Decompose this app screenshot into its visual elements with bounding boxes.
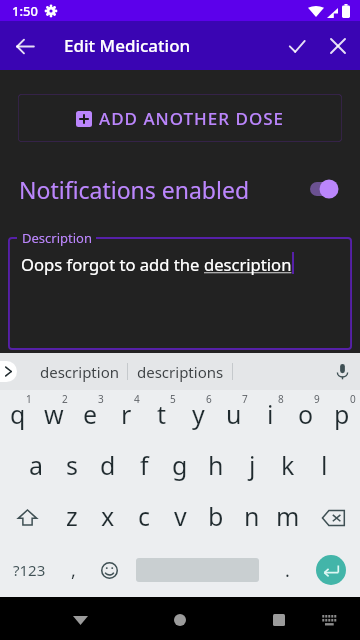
button[interactable]: s — [54, 441, 90, 492]
button[interactable]: Enter — [316, 555, 346, 585]
button[interactable]: Close — [320, 28, 356, 64]
button[interactable]: Home — [160, 600, 200, 640]
staticText: a — [29, 448, 44, 482]
staticText: 5 — [170, 392, 176, 406]
button[interactable]: m — [270, 492, 306, 543]
staticText: s — [66, 448, 78, 482]
button[interactable]: k — [270, 441, 306, 492]
staticText: y — [192, 397, 205, 431]
staticText: p — [334, 397, 350, 431]
button[interactable]: i — [252, 390, 288, 441]
staticText: ?123 — [13, 560, 46, 580]
button[interactable]: Shift — [0, 492, 54, 543]
button[interactable]: . — [270, 543, 304, 597]
staticText: u — [226, 397, 242, 431]
button[interactable]: t — [144, 390, 180, 441]
button[interactable]: x — [90, 492, 126, 543]
button[interactable]: , — [56, 543, 90, 597]
staticText: v — [174, 499, 187, 533]
staticText: 1:50 — [12, 2, 38, 20]
staticText: k — [281, 448, 295, 482]
staticText: 1 — [26, 392, 32, 406]
button[interactable]: ?123 — [5, 543, 53, 597]
staticText: i — [267, 397, 274, 431]
staticText: z — [66, 499, 78, 533]
button[interactable]: a — [18, 441, 54, 492]
staticText: description — [204, 253, 292, 276]
button[interactable]: e — [72, 390, 108, 441]
button[interactable]: Backspace — [306, 492, 360, 543]
staticText: f — [140, 448, 149, 482]
button[interactable]: y — [180, 390, 216, 441]
staticText: g — [172, 448, 188, 482]
staticText: m — [276, 499, 300, 533]
staticText: 0 — [350, 392, 356, 406]
button[interactable]: q — [0, 390, 36, 441]
button[interactable]: d — [90, 441, 126, 492]
button[interactable]: z — [54, 492, 90, 543]
staticText: j — [249, 448, 256, 482]
button[interactable]: Save — [279, 28, 315, 64]
staticText: n — [244, 499, 260, 533]
button[interactable]: f — [126, 441, 162, 492]
button[interactable]: Back — [60, 600, 100, 640]
button[interactable]: o — [288, 390, 324, 441]
button[interactable]: w — [36, 390, 72, 441]
button[interactable]: r — [108, 390, 144, 441]
staticText: Description — [22, 229, 92, 247]
staticText: 2 — [62, 392, 68, 406]
staticText: 6 — [206, 392, 212, 406]
staticText: l — [321, 448, 328, 482]
button[interactable]: Back — [7, 28, 43, 64]
button[interactable]: v — [162, 492, 198, 543]
button[interactable]: descriptions — [128, 353, 232, 390]
staticText: h — [208, 448, 224, 482]
button[interactable]: p — [324, 390, 360, 441]
staticText: x — [101, 499, 115, 533]
button[interactable]: u — [216, 390, 252, 441]
staticText: o — [298, 397, 314, 431]
button[interactable]: description — [28, 353, 131, 390]
staticText: Oops forgot to add the — [21, 253, 204, 276]
staticText: 4 — [134, 392, 140, 406]
button[interactable]: h — [198, 441, 234, 492]
button[interactable]: j — [234, 441, 270, 492]
button[interactable]: Recent apps — [259, 600, 299, 640]
staticText: b — [208, 499, 224, 533]
staticText: , — [71, 558, 76, 583]
button[interactable]: l — [306, 441, 342, 492]
staticText: Notifications enabled — [19, 174, 250, 205]
button[interactable]: Voice input — [327, 356, 358, 387]
staticText: 7 — [242, 392, 248, 406]
button[interactable]: b — [198, 492, 234, 543]
staticText: c — [138, 499, 151, 533]
staticText: t — [157, 397, 167, 431]
staticText: description — [40, 362, 119, 382]
button[interactable]: n — [234, 492, 270, 543]
staticText: w — [44, 397, 64, 431]
button[interactable]: Notifications enabled — [0, 165, 360, 213]
button[interactable]: c — [126, 492, 162, 543]
staticText: e — [83, 397, 98, 431]
staticText: q — [10, 397, 26, 431]
button[interactable]: g — [162, 441, 198, 492]
staticText: . — [285, 558, 290, 583]
button[interactable]: Switch keyboard — [314, 605, 344, 635]
button[interactable]: ADD ANOTHER DOSE — [18, 94, 342, 142]
button[interactable]: Emoji — [92, 543, 126, 597]
staticText: ADD ANOTHER DOSE — [99, 107, 285, 130]
staticText: Edit Medication — [64, 34, 191, 57]
staticText: r — [121, 397, 132, 431]
staticText: descriptions — [137, 362, 224, 382]
staticText: 3 — [98, 392, 104, 406]
staticText: 9 — [314, 392, 320, 406]
staticText: 8 — [278, 392, 284, 406]
button[interactable]: Expand suggestions — [0, 361, 17, 382]
staticText: d — [100, 448, 116, 482]
